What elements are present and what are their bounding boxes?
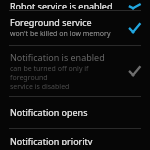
staticText: Foreground service (10, 16, 92, 28)
staticText: Notification is enabled (10, 51, 105, 63)
button[interactable]: Notification priority (0, 129, 150, 150)
staticText: Notification priority (10, 135, 93, 145)
button[interactable]: Robot service is enabled (0, 0, 150, 10)
button[interactable]: Notification opens (0, 97, 150, 128)
staticText: Robot service is enabled (10, 0, 113, 9)
button[interactable]: Foreground service (0, 11, 150, 45)
staticText: can be turned off only if foreground ser… (10, 64, 118, 91)
staticText: won't be killed on low memory (10, 29, 111, 39)
button[interactable]: Notification is enabled (0, 46, 150, 96)
staticText: Notification opens (10, 106, 88, 118)
